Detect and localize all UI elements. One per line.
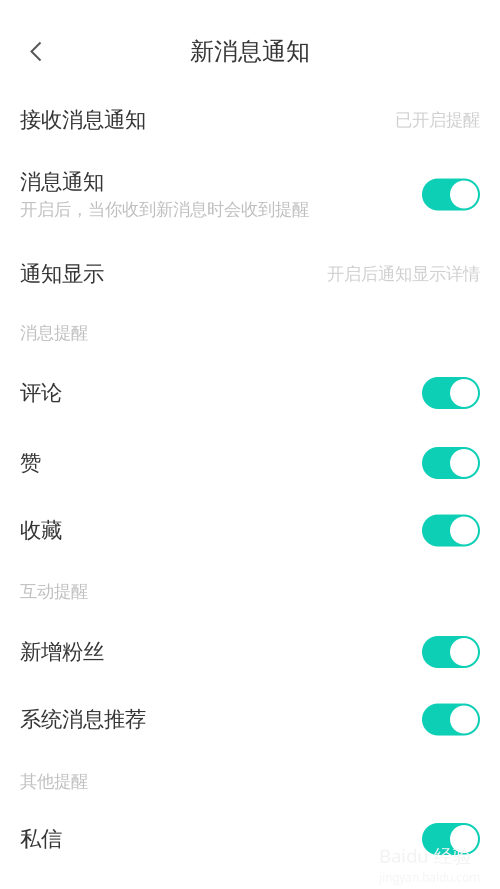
button[interactable]: 私信 xyxy=(0,808,500,870)
staticText: 新消息通知 xyxy=(190,37,310,66)
button[interactable]: 消息通知 xyxy=(0,149,500,240)
button[interactable]: 系统消息推荐 xyxy=(0,684,500,755)
button[interactable]: 评论 xyxy=(0,358,500,428)
staticText: 赞 xyxy=(20,450,41,476)
button[interactable]: Back xyxy=(14,29,58,73)
staticText: 新增粉丝 xyxy=(20,639,104,665)
staticText: 收藏 xyxy=(20,517,62,544)
staticText: jingyan.baidu.com xyxy=(379,869,480,885)
staticText: 已开启提醒 xyxy=(395,109,480,131)
button[interactable]: 新增粉丝 xyxy=(0,620,500,684)
staticText: 接收消息通知 xyxy=(20,107,146,133)
staticText: 私信 xyxy=(20,826,62,852)
staticText: 系统消息推荐 xyxy=(20,706,146,733)
staticText: 其他提醒 xyxy=(20,771,88,792)
staticText: 开启后通知显示详情 xyxy=(327,263,480,285)
button[interactable]: 赞 xyxy=(0,428,500,498)
button[interactable]: 接收消息通知 xyxy=(0,91,500,149)
staticText: 通知显示 xyxy=(20,261,104,287)
staticText: 互动提醒 xyxy=(20,581,88,602)
staticText: 消息提醒 xyxy=(20,322,88,344)
staticText: 消息通知 xyxy=(20,169,104,195)
staticText: 开启后，当你收到新消息时会收到提醒 xyxy=(20,199,309,220)
staticText: Baidu 经验 xyxy=(379,843,472,868)
button[interactable]: 收藏 xyxy=(0,498,500,563)
staticText: 评论 xyxy=(20,380,62,406)
button[interactable]: 通知显示 xyxy=(0,240,500,308)
